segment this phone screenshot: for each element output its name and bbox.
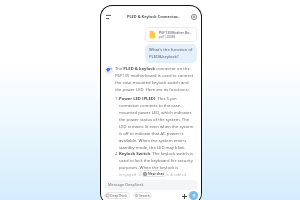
button[interactable]: Menu [103,11,114,22]
staticText: Keylock Switch: The keylock switch is us… [119,151,196,178]
button[interactable]: DeepThink [106,193,128,198]
staticText: Search [139,193,150,198]
button[interactable]: New chat [188,11,199,22]
staticText: P6F135Mother Bo... [159,30,193,35]
button[interactable]: What's the function of PLED&keylock? [149,47,193,60]
button[interactable]: Attach [180,192,188,200]
staticText: New chat [148,171,164,176]
button[interactable]: P6F135Mother Bo... [148,30,193,39]
button[interactable]: Search [135,193,150,198]
staticText: DeepThink [110,193,128,198]
button[interactable]: Message DeepSeek [108,179,194,190]
staticText: 2. [115,151,119,157]
staticText: The PLED & keylock connector on the P6F1… [115,66,196,93]
staticText: Power LED (PLED): This 5-pin connector c… [119,96,196,151]
staticText: 1. [115,96,119,102]
button[interactable]: New chat [143,171,164,176]
button[interactable]: Send [189,191,198,200]
staticText: Message DeepSeek [108,182,144,187]
staticText: What's the function of PLED&keylock? [149,47,193,60]
staticText: pdf 1.82MB [159,35,176,39]
staticText: PLED & Keylock Connector... [127,14,181,19]
